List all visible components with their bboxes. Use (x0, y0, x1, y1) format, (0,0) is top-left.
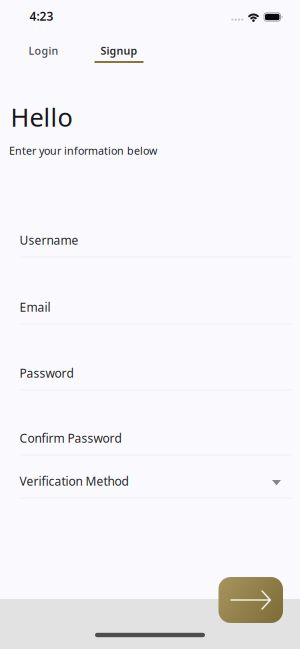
staticText: Verification Method (19, 473, 128, 489)
staticText: Username (19, 232, 78, 248)
button[interactable]: Login (19, 37, 68, 67)
button[interactable]: Signup (94, 37, 143, 67)
staticText: 4:23 (29, 8, 53, 24)
staticText: Enter your information below (9, 143, 157, 158)
button[interactable]: Confirm Password (19, 428, 291, 458)
button[interactable]: Email (19, 297, 291, 327)
button[interactable]: Password (19, 363, 291, 393)
staticText: Password (19, 365, 73, 381)
staticText: Signup (100, 43, 137, 58)
button[interactable]: Continue (218, 577, 283, 623)
staticText: Login (28, 43, 58, 58)
staticText: Confirm Password (19, 430, 121, 446)
button[interactable]: Verification Method (19, 471, 291, 501)
staticText: Hello (10, 100, 72, 134)
button[interactable]: Username (19, 230, 291, 260)
staticText: Email (19, 299, 50, 315)
